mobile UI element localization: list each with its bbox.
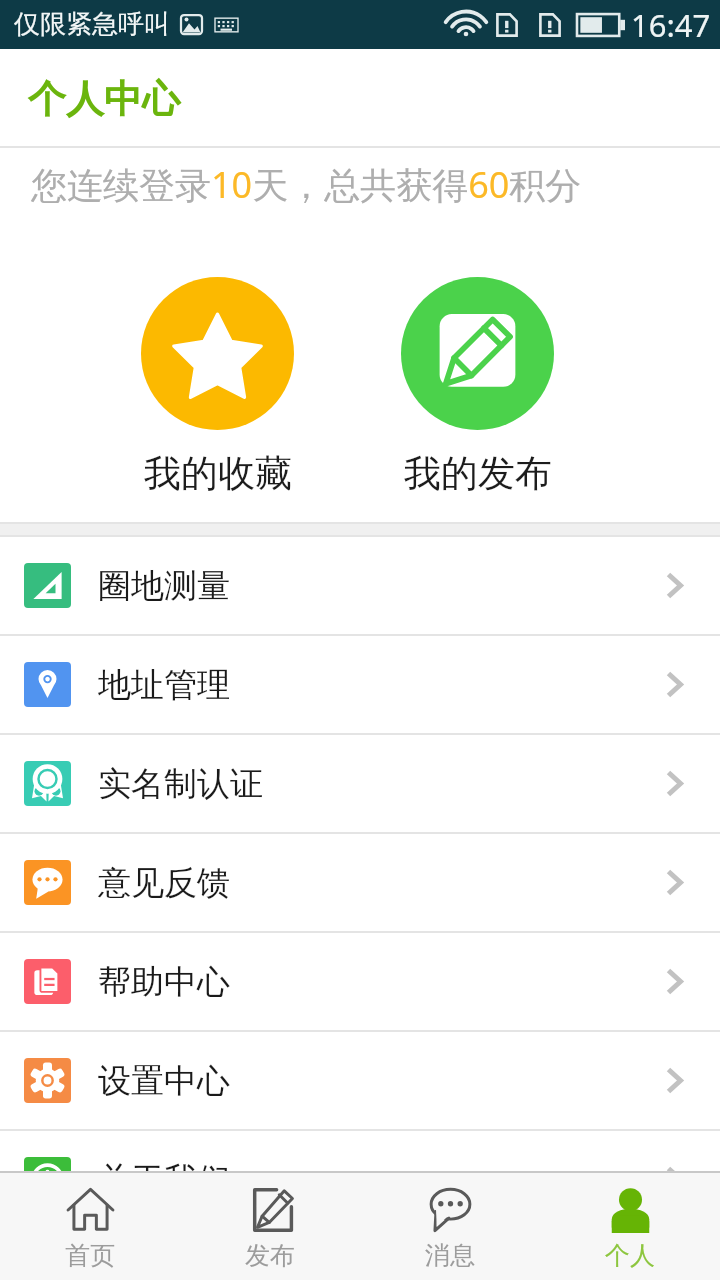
button[interactable]: 设置中心 xyxy=(0,1032,720,1129)
button[interactable]: 关于我们 xyxy=(0,1131,720,1171)
staticText: 意见反馈 xyxy=(98,862,230,904)
staticText: 关于我们 xyxy=(98,1159,230,1171)
staticText: 首页 xyxy=(65,1240,115,1271)
button[interactable]: 我的发布 xyxy=(401,277,554,497)
staticText: 16:47 xyxy=(631,4,711,46)
staticText: 消息 xyxy=(425,1240,475,1271)
staticText: 实名制认证 xyxy=(98,763,263,805)
staticText: 个人中心 xyxy=(28,75,180,123)
button[interactable]: 圈地测量 xyxy=(0,537,720,634)
staticText: 地址管理 xyxy=(98,664,230,706)
staticText: 个人 xyxy=(605,1240,655,1271)
button[interactable]: 消息 xyxy=(360,1173,540,1280)
button[interactable]: 个人 xyxy=(540,1173,720,1280)
button[interactable]: 我的收藏 xyxy=(141,277,294,497)
button[interactable]: 实名制认证 xyxy=(0,735,720,832)
staticText: 设置中心 xyxy=(98,1060,230,1102)
staticText: 仅限紧急呼叫 xyxy=(14,8,170,41)
button[interactable]: 意见反馈 xyxy=(0,834,720,931)
button[interactable]: 首页 xyxy=(0,1173,180,1280)
staticText: 帮助中心 xyxy=(98,961,230,1003)
staticText: 我的收藏 xyxy=(144,450,292,497)
button[interactable]: 发布 xyxy=(180,1173,360,1280)
staticText: 您连续登录10天，总共获得60积分 xyxy=(31,160,582,209)
button[interactable]: 帮助中心 xyxy=(0,933,720,1030)
staticText: 我的发布 xyxy=(404,450,552,497)
button[interactable]: 地址管理 xyxy=(0,636,720,733)
staticText: 圈地测量 xyxy=(98,565,230,607)
staticText: 发布 xyxy=(245,1240,295,1271)
